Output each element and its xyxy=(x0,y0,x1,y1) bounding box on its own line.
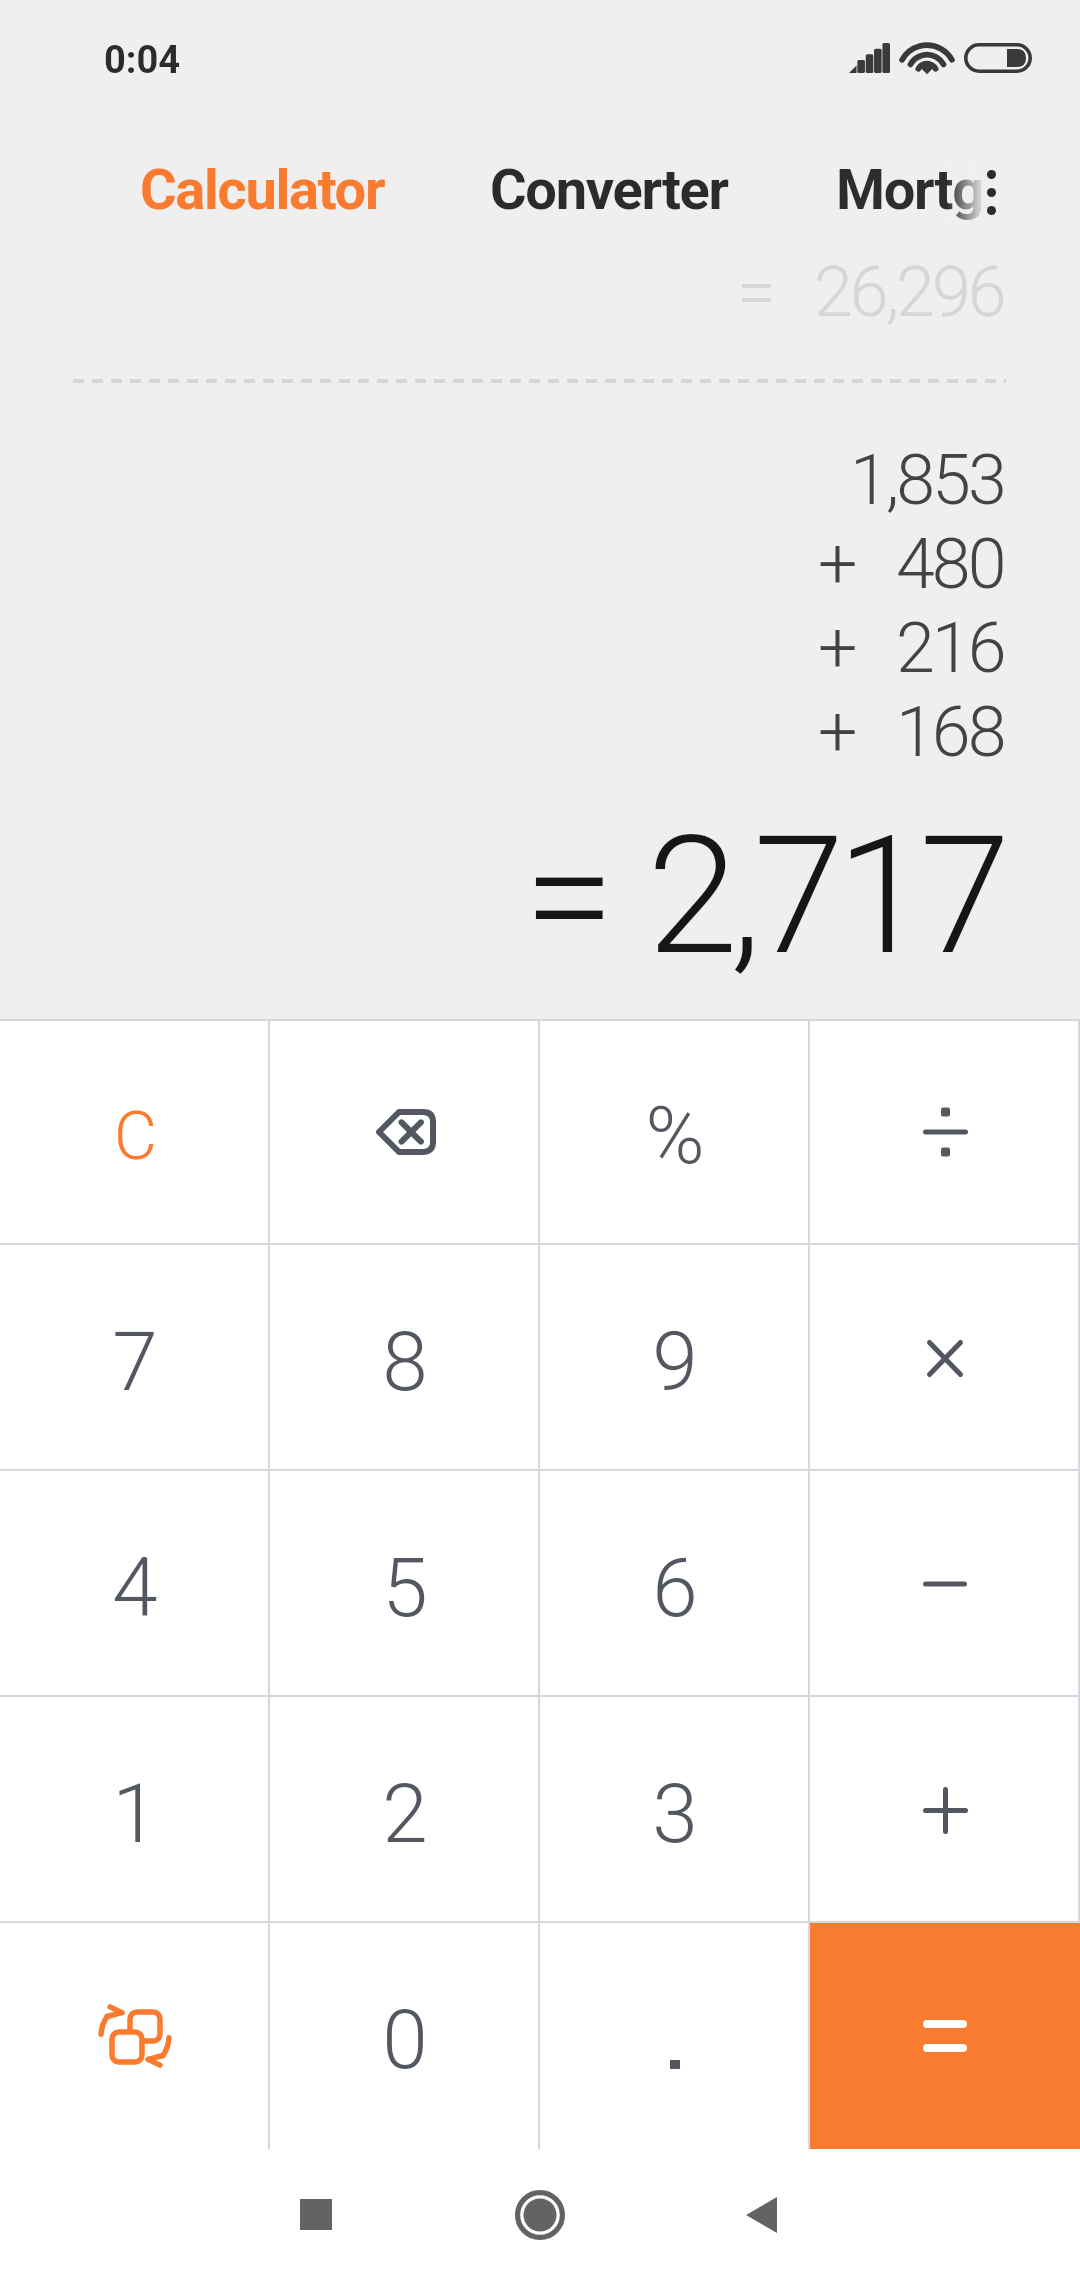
button[interactable]: 8 xyxy=(270,1245,540,1471)
staticText: 1 xyxy=(112,1766,158,1862)
button[interactable]: % xyxy=(540,1019,810,1245)
button[interactable]: Calculator xyxy=(140,157,392,257)
button[interactable]: Decimal point xyxy=(540,1923,810,2149)
button[interactable]: 2 xyxy=(270,1697,540,1923)
staticText: 0:04 xyxy=(104,38,181,83)
button[interactable]: 1 xyxy=(0,1697,270,1923)
staticText: Converter xyxy=(490,157,728,223)
button[interactable]: Unit converter xyxy=(0,1923,270,2149)
button[interactable]: Divide xyxy=(810,1019,1080,1245)
staticText: 8 xyxy=(382,1314,428,1410)
button[interactable]: Plus xyxy=(810,1697,1080,1923)
staticText: Calculator xyxy=(140,157,385,223)
button[interactable]: Mortgage xyxy=(836,157,986,257)
staticText: 7 xyxy=(112,1314,158,1410)
button[interactable]: Recent apps xyxy=(250,2149,382,2280)
staticText: % xyxy=(645,1089,705,1183)
staticText: 1,853 xyxy=(850,439,1004,521)
button[interactable]: Backspace xyxy=(270,1019,540,1245)
staticText: = xyxy=(524,800,615,992)
staticText: + xyxy=(818,607,858,689)
staticText: + xyxy=(818,523,858,605)
staticText: 216 xyxy=(896,607,1004,689)
staticText: Mortgage xyxy=(836,157,986,223)
staticText: 168 xyxy=(896,691,1004,773)
staticText: 4 xyxy=(112,1540,158,1636)
staticText: 9 xyxy=(652,1314,698,1410)
staticText: 2 xyxy=(382,1766,428,1862)
button[interactable]: More options xyxy=(955,144,1027,240)
button[interactable]: Equals xyxy=(810,1923,1080,2149)
button[interactable]: Converter xyxy=(490,157,738,257)
staticText: 3 xyxy=(652,1766,698,1862)
button[interactable]: 5 xyxy=(270,1471,540,1697)
button[interactable]: C xyxy=(0,1019,270,1245)
button[interactable]: Back xyxy=(695,2149,827,2280)
staticText: 5 xyxy=(382,1540,428,1636)
staticText: = xyxy=(737,251,776,333)
button[interactable]: Home xyxy=(474,2149,606,2280)
button[interactable]: Multiply xyxy=(810,1245,1080,1471)
button[interactable]: 9 xyxy=(540,1245,810,1471)
staticText: 2,717 xyxy=(647,800,1003,992)
staticText: + xyxy=(818,691,858,773)
staticText: 0 xyxy=(382,1992,428,2088)
button[interactable]: 4 xyxy=(0,1471,270,1697)
staticText: 6 xyxy=(652,1540,698,1636)
button[interactable]: 7 xyxy=(0,1245,270,1471)
button[interactable]: 3 xyxy=(540,1697,810,1923)
staticText: C xyxy=(114,1098,157,1175)
button[interactable]: Minus xyxy=(810,1471,1080,1697)
button[interactable]: 6 xyxy=(540,1471,810,1697)
button[interactable]: 0 xyxy=(270,1923,540,2149)
staticText: 480 xyxy=(896,523,1004,605)
staticText: 26,296 xyxy=(814,251,1004,333)
